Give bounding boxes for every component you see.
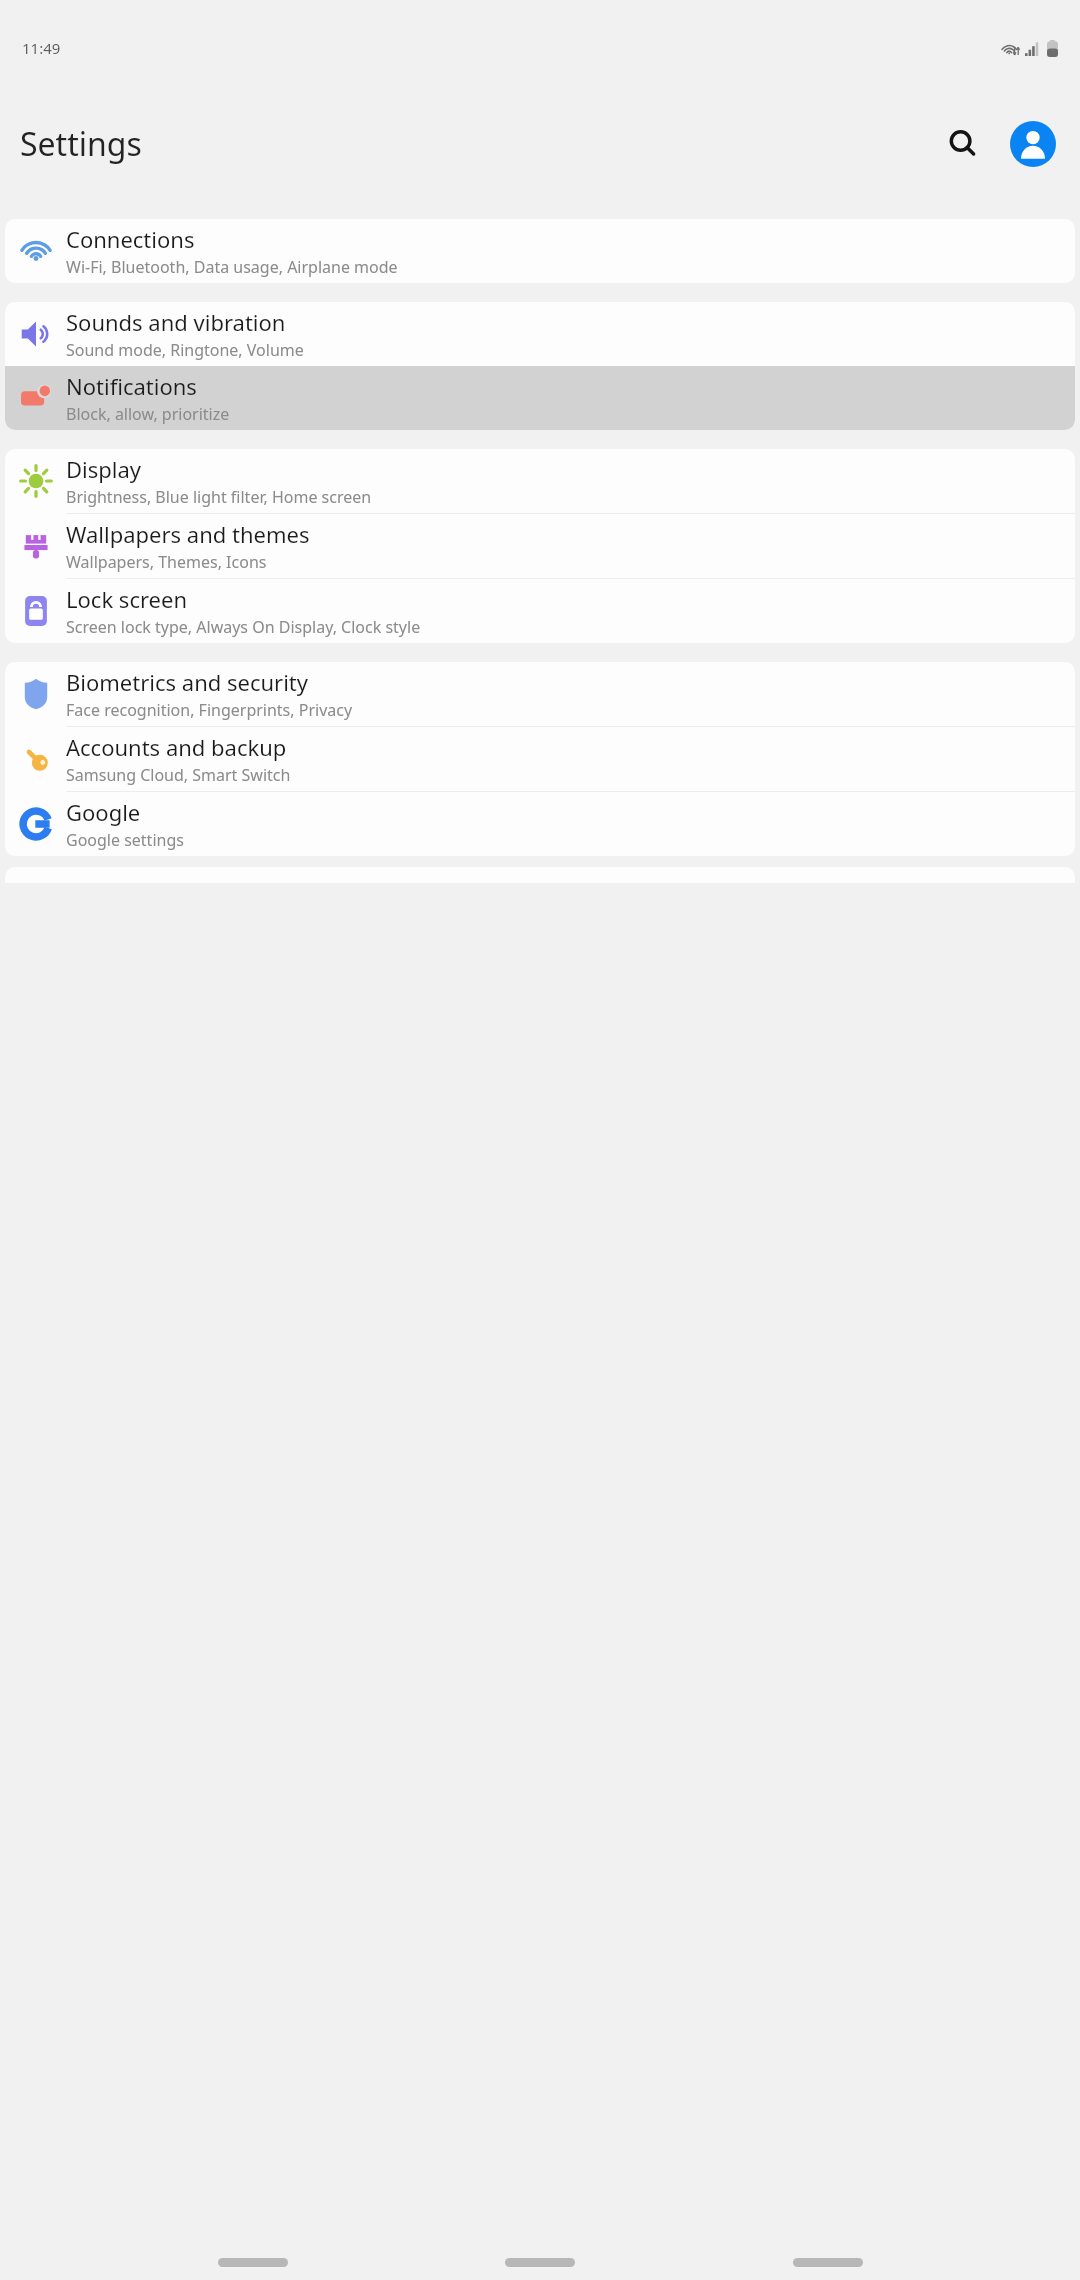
- button[interactable]: Navigation button: [793, 2258, 863, 2267]
- button[interactable]: Display: [5, 449, 1075, 513]
- button[interactable]: Accounts and backup: [5, 727, 1075, 791]
- staticText: Face recognition, Fingerprints, Privacy: [66, 699, 353, 721]
- button[interactable]: Search: [934, 115, 992, 173]
- button[interactable]: Sounds and vibration: [5, 302, 1075, 366]
- staticText: 11:49: [22, 38, 61, 58]
- staticText: Google: [66, 797, 141, 827]
- staticText: Google settings: [66, 829, 184, 851]
- staticText: Lock screen: [66, 584, 188, 614]
- staticText: Sound mode, Ringtone, Volume: [66, 339, 304, 361]
- staticText: Accounts and backup: [66, 732, 287, 762]
- staticText: Wallpapers and themes: [66, 519, 310, 549]
- staticText: Settings: [20, 122, 142, 166]
- button[interactable]: Account: [1004, 115, 1062, 173]
- button[interactable]: Biometrics and security: [5, 662, 1075, 726]
- staticText: Screen lock type, Always On Display, Clo…: [66, 616, 421, 638]
- staticText: Wallpapers, Themes, Icons: [66, 551, 267, 573]
- button[interactable]: Wallpapers and themes: [5, 514, 1075, 578]
- staticText: Brightness, Blue light filter, Home scre…: [66, 486, 372, 508]
- button[interactable]: Navigation button: [505, 2258, 575, 2267]
- staticText: Connections: [66, 224, 195, 254]
- staticText: Wi-Fi, Bluetooth, Data usage, Airplane m…: [66, 256, 398, 278]
- staticText: Block, allow, prioritize: [66, 403, 230, 425]
- staticText: Notifications: [66, 371, 197, 401]
- staticText: Sounds and vibration: [66, 307, 286, 337]
- button[interactable]: Lock screen: [5, 579, 1075, 643]
- staticText: Samsung Cloud, Smart Switch: [66, 764, 291, 786]
- staticText: Biometrics and security: [66, 667, 309, 697]
- staticText: Display: [66, 454, 142, 484]
- button[interactable]: Google: [5, 792, 1075, 856]
- button[interactable]: Navigation button: [218, 2258, 288, 2267]
- button[interactable]: Notifications: [5, 366, 1075, 430]
- button[interactable]: Connections: [5, 219, 1075, 283]
